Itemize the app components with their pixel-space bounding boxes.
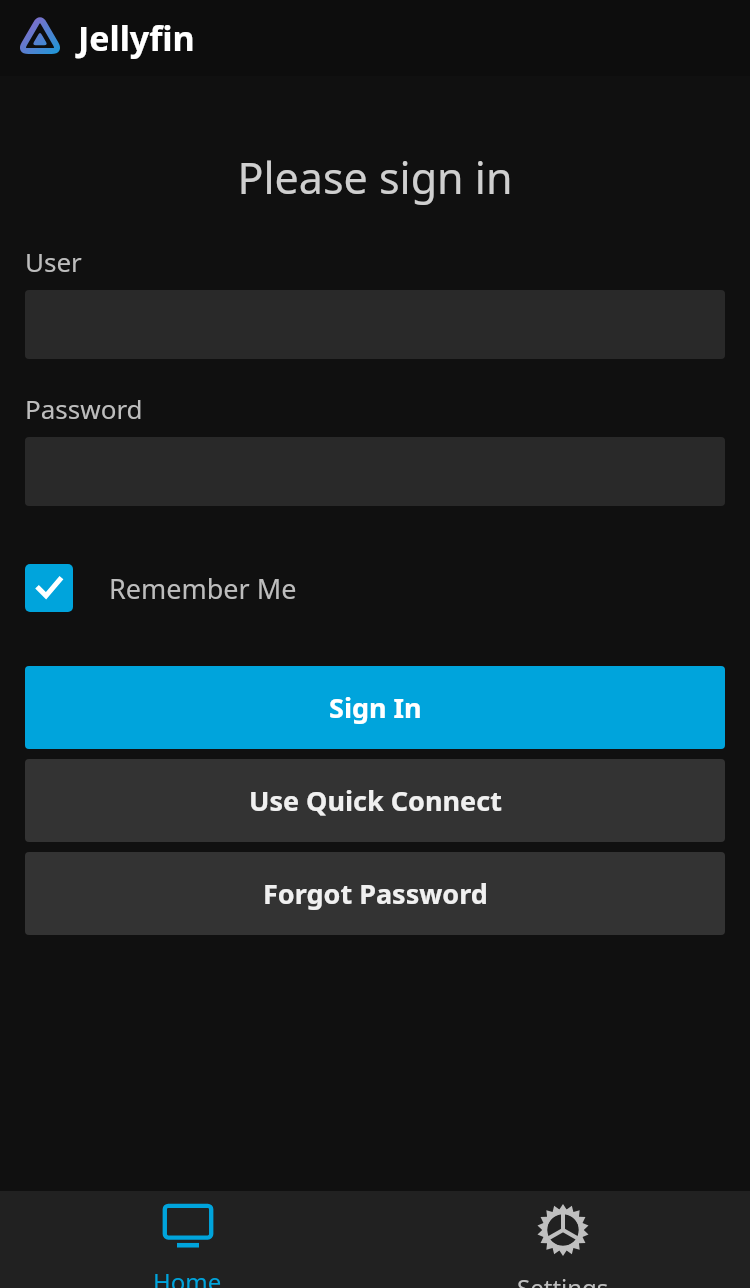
button[interactable]: Sign In bbox=[25, 666, 725, 749]
staticText: Sign In bbox=[329, 689, 422, 726]
staticText: Settings bbox=[517, 1271, 609, 1288]
staticText: Forgot Password bbox=[263, 875, 488, 912]
other: Jellyfin logo bbox=[14, 12, 66, 64]
staticText: Jellyfin bbox=[78, 15, 195, 61]
staticText: Use Quick Connect bbox=[249, 782, 502, 819]
button[interactable]: Settings bbox=[375, 1191, 750, 1288]
other: Settings bbox=[536, 1203, 590, 1257]
button[interactable]: Use Quick Connect bbox=[25, 759, 725, 842]
button[interactable]: Forgot Password bbox=[25, 852, 725, 935]
staticText: Password bbox=[25, 391, 143, 426]
button[interactable]: Home bbox=[0, 1191, 375, 1288]
staticText: Please sign in bbox=[0, 148, 750, 207]
staticText: Home bbox=[153, 1265, 222, 1288]
staticText: User bbox=[25, 244, 82, 279]
other: Home bbox=[159, 1203, 217, 1251]
button[interactable]: Remember Me bbox=[25, 564, 297, 612]
staticText: Remember Me bbox=[109, 570, 297, 607]
